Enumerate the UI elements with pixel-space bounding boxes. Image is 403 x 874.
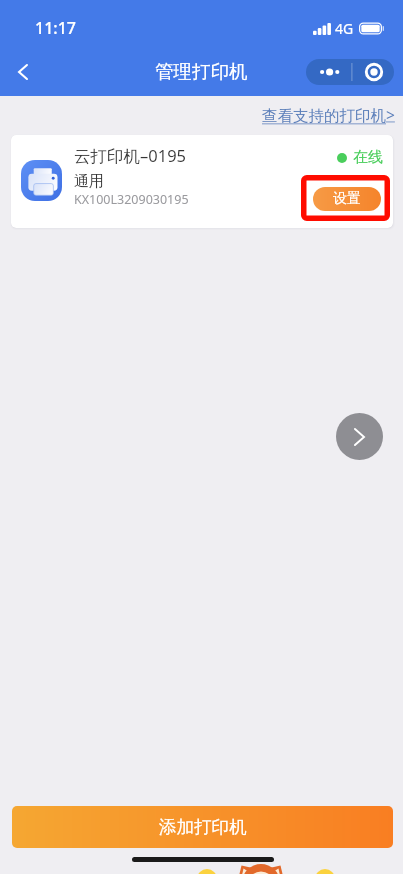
staticText: KX100L3209030195: [74, 191, 189, 208]
button[interactable]: 云打印机–0195: [11, 135, 393, 228]
staticText: 云打印机–0195: [74, 144, 187, 167]
staticText: 4G: [335, 19, 354, 38]
staticText: 在线: [353, 148, 383, 167]
staticText: 通用: [74, 172, 104, 191]
staticText: 添加打印机: [159, 816, 247, 838]
staticText: 11:17: [35, 17, 76, 39]
button[interactable]: 设置: [313, 187, 381, 211]
button[interactable]: More options: [306, 59, 352, 85]
staticText: 管理打印机: [155, 60, 248, 83]
button[interactable]: Back: [0, 48, 46, 96]
staticText: 设置: [333, 190, 361, 208]
button[interactable]: 添加打印机: [12, 806, 393, 848]
button[interactable]: Close mini program: [352, 59, 394, 85]
button[interactable]: 查看支持的打印机>: [261, 102, 396, 127]
staticText: 查看支持的打印机>: [262, 104, 395, 125]
button[interactable]: Next: [336, 413, 383, 460]
